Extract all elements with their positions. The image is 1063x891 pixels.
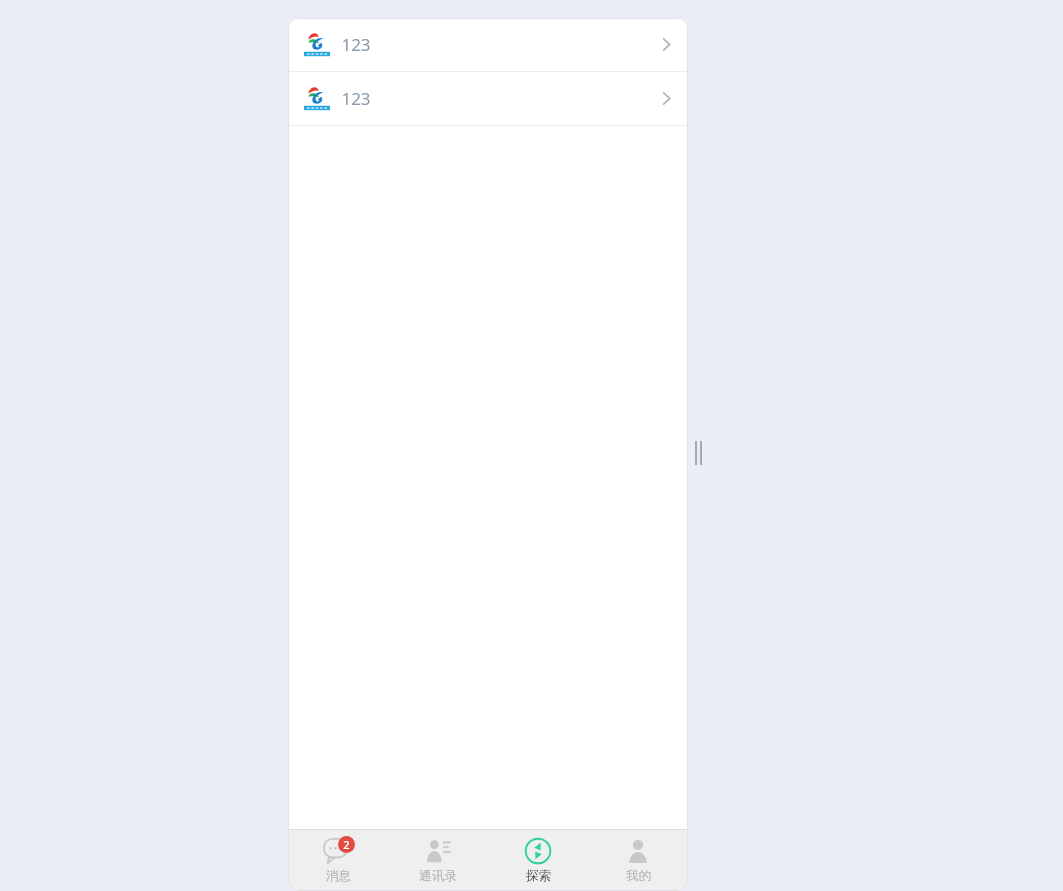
button[interactable]: Messages	[288, 830, 388, 891]
button[interactable]: Contacts	[388, 830, 488, 891]
button[interactable]: 123	[288, 18, 688, 71]
button[interactable]: Resize panel	[693, 441, 703, 465]
button[interactable]: Profile	[588, 830, 688, 891]
staticText: 探索	[526, 868, 551, 884]
staticText: 123	[341, 33, 371, 56]
staticText: 2	[343, 837, 350, 852]
staticText: 通讯录	[419, 868, 457, 884]
staticText: 我的	[626, 868, 651, 884]
button[interactable]: 123	[288, 72, 688, 125]
staticText: 消息	[326, 868, 351, 884]
button[interactable]: Explore	[488, 830, 588, 891]
staticText: 123	[341, 87, 371, 110]
